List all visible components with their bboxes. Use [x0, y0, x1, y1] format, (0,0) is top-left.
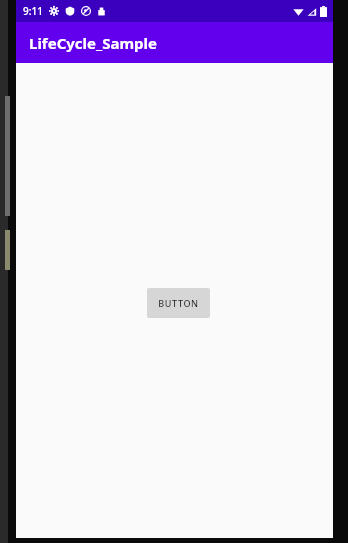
staticText: LifeCycle_Sample: [29, 33, 157, 53]
staticText: BUTTON: [158, 297, 199, 309]
staticText: 9:11: [23, 4, 43, 18]
button[interactable]: BUTTON: [147, 288, 210, 318]
